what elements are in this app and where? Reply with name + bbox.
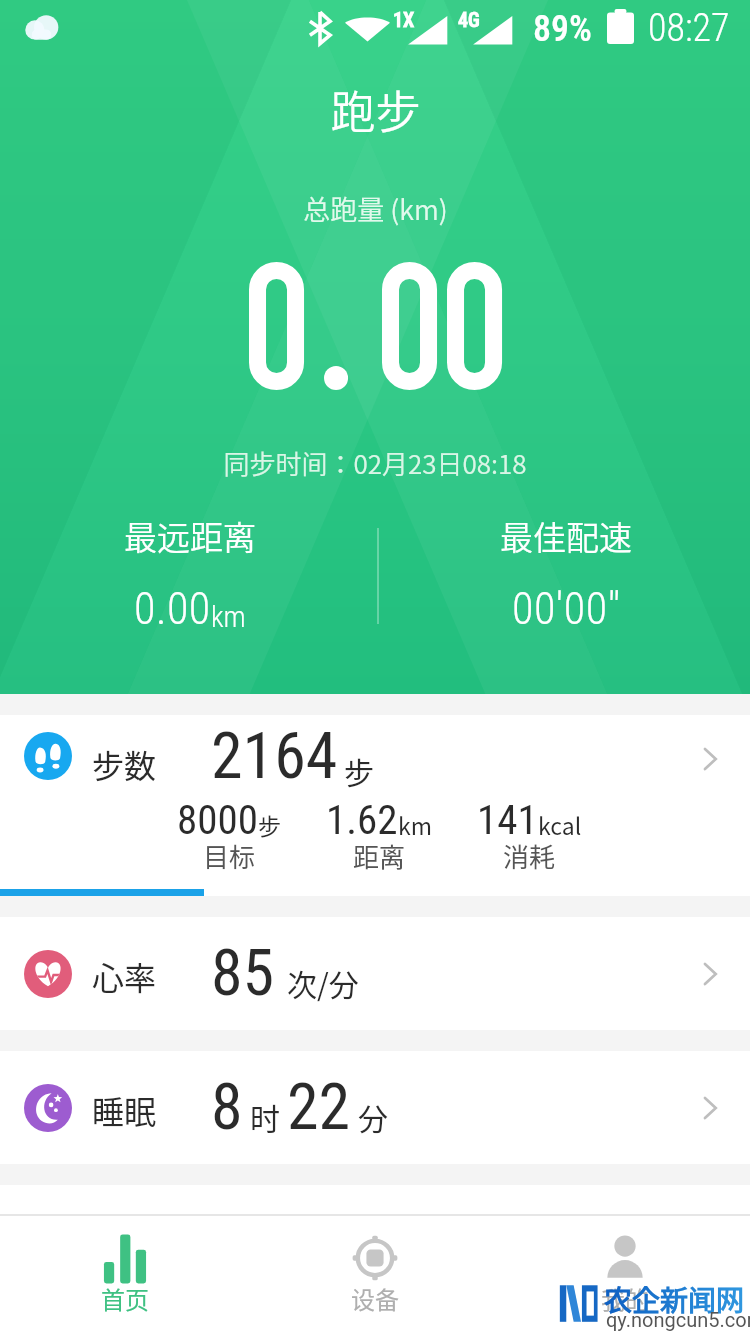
staticText: 8000: [177, 796, 258, 844]
staticText: 同步时间：02月23日08:18: [223, 444, 527, 482]
staticText: kcal: [538, 808, 582, 841]
staticText: 步: [258, 808, 281, 841]
staticText: 跑步: [330, 77, 421, 142]
staticText: 我的: [601, 1281, 649, 1316]
staticText: 22: [287, 1070, 351, 1145]
button[interactable]: Devices: [250, 1216, 500, 1333]
staticText: 睡眠: [92, 1087, 157, 1133]
staticText: 目标: [203, 837, 256, 875]
staticText: 总跑量 (km): [303, 189, 448, 228]
staticText: 8: [211, 1070, 243, 1145]
staticText: 1.62: [326, 796, 398, 844]
staticText: km: [398, 808, 432, 841]
staticText: km: [211, 600, 246, 634]
staticText: 最远距离: [124, 512, 256, 560]
staticText: 分: [358, 1095, 388, 1138]
staticText: qy.nongcun5.com: [606, 1308, 750, 1331]
staticText: 4G: [458, 8, 480, 31]
staticText: 1X: [393, 8, 415, 31]
staticText: 2164: [211, 719, 338, 794]
staticText: 00'00": [512, 583, 621, 635]
staticText: 0.00: [134, 583, 211, 635]
button[interactable]: 睡眠: [0, 1051, 750, 1164]
staticText: 最佳配速: [500, 512, 632, 560]
staticText: 步数: [92, 741, 157, 787]
staticText: 农企新闻网: [604, 1279, 745, 1320]
staticText: 时: [250, 1095, 280, 1138]
button[interactable]: Home: [0, 1216, 250, 1333]
staticText: 85: [211, 936, 275, 1011]
staticText: 距离: [353, 837, 406, 875]
button[interactable]: 心率: [0, 917, 750, 1030]
button[interactable]: Profile: [500, 1216, 750, 1333]
staticText: 步: [344, 749, 374, 792]
staticText: 141: [477, 796, 538, 844]
staticText: 设备: [351, 1281, 399, 1316]
staticText: 首页: [101, 1281, 149, 1316]
staticText: 次/分: [287, 961, 359, 1004]
staticText: 89%: [533, 8, 592, 50]
staticText: 08:27: [648, 6, 730, 51]
staticText: 消耗: [503, 837, 556, 875]
button[interactable]: 步数: [0, 715, 750, 896]
staticText: 心率: [92, 953, 157, 999]
